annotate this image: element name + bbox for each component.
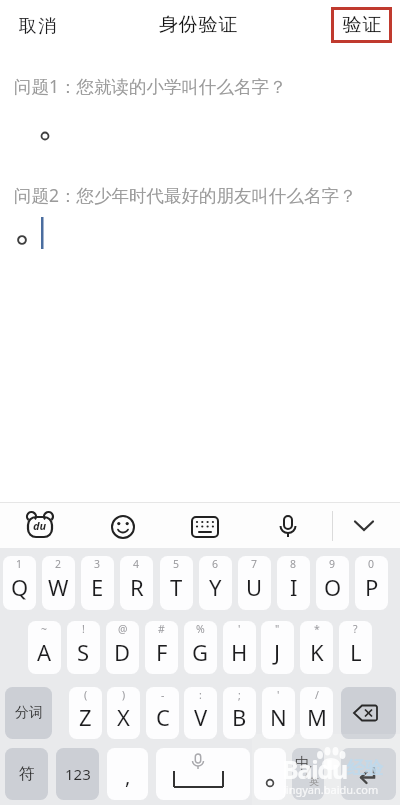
- staticText: V: [194, 702, 208, 732]
- staticText: (: [84, 688, 88, 702]
- staticText: X: [117, 702, 130, 732]
- staticText: N: [270, 702, 287, 732]
- staticText: P: [365, 572, 379, 602]
- button[interactable]: #: [145, 621, 178, 674]
- staticText: 符: [19, 764, 35, 784]
- staticText: jingyan.baidu.com: [283, 782, 379, 797]
- button[interactable]: 6: [199, 556, 232, 610]
- button[interactable]: :: [184, 687, 217, 739]
- staticText: ": [275, 622, 280, 636]
- staticText: 问题1：您就读的小学叫什么名字？: [14, 74, 287, 98]
- staticText: H: [231, 637, 248, 667]
- button[interactable]: [341, 748, 396, 800]
- staticText: *: [314, 622, 320, 636]
- staticText: ;: [238, 688, 241, 702]
- button[interactable]: ?: [339, 621, 372, 674]
- button[interactable]: [156, 748, 250, 800]
- staticText: 5: [173, 557, 180, 571]
- staticText: 经验: [347, 757, 383, 780]
- staticText: 中: [295, 754, 310, 773]
- staticText: W: [48, 572, 69, 602]
- staticText: #: [158, 622, 165, 636]
- staticText: K: [310, 637, 324, 667]
- staticText: /: [315, 688, 319, 702]
- staticText: O: [324, 572, 342, 602]
- button[interactable]: /: [300, 687, 333, 739]
- button[interactable]: [18, 503, 62, 547]
- staticText: L: [350, 637, 362, 667]
- staticText: M: [307, 702, 327, 732]
- staticText: B: [232, 702, 247, 732]
- button[interactable]: 0: [355, 556, 388, 610]
- staticText: T: [170, 572, 183, 602]
- button[interactable]: 9: [316, 556, 349, 610]
- button[interactable]: 4: [120, 556, 153, 610]
- button[interactable]: @: [106, 621, 139, 674]
- button[interactable]: [101, 503, 145, 547]
- staticText: 身份验证: [159, 13, 239, 37]
- staticText: 8: [290, 557, 297, 571]
- button[interactable]: *: [300, 621, 333, 674]
- button[interactable]: 取消: [10, 10, 64, 42]
- staticText: Baidu: [282, 752, 348, 786]
- staticText: ~: [41, 622, 48, 636]
- button[interactable]: !: [67, 621, 100, 674]
- button[interactable]: ': [223, 621, 256, 674]
- button[interactable]: 2: [42, 556, 75, 610]
- staticText: 问题2：您少年时代最好的朋友叫什么名字？: [14, 183, 357, 207]
- staticText: 7: [251, 557, 258, 571]
- button[interactable]: 符: [5, 748, 48, 800]
- button[interactable]: [266, 503, 310, 547]
- staticText: :: [199, 688, 202, 702]
- staticText: 9: [329, 557, 336, 571]
- button[interactable]: [340, 503, 384, 547]
- staticText: ': [238, 622, 241, 636]
- staticText: D: [114, 637, 131, 667]
- staticText: du: [33, 518, 47, 533]
- staticText: 0: [368, 557, 375, 571]
- staticText: @: [118, 622, 128, 636]
- staticText: R: [130, 572, 144, 602]
- button[interactable]: 分词: [5, 687, 52, 739]
- button[interactable]: -: [146, 687, 179, 739]
- staticText: 3: [94, 557, 101, 571]
- staticText: ': [277, 688, 280, 702]
- staticText: Z: [79, 702, 92, 732]
- staticText: ): [122, 688, 126, 702]
- button[interactable]: 1: [3, 556, 36, 610]
- button[interactable]: [341, 687, 396, 739]
- staticText: 123: [65, 764, 91, 784]
- button[interactable]: [183, 503, 227, 547]
- button[interactable]: ~: [28, 621, 61, 674]
- staticText: Y: [209, 572, 222, 602]
- button[interactable]: ;: [223, 687, 256, 739]
- button[interactable]: ": [261, 621, 294, 674]
- staticText: ?: [353, 622, 358, 636]
- button[interactable]: 中: [292, 748, 324, 800]
- button[interactable]: 5: [160, 556, 193, 610]
- staticText: E: [91, 572, 104, 602]
- button[interactable]: 3: [81, 556, 114, 610]
- staticText: A: [37, 637, 52, 667]
- button[interactable]: (: [69, 687, 102, 739]
- staticText: C: [156, 702, 170, 732]
- button[interactable]: ,: [107, 748, 148, 800]
- button[interactable]: 验证: [331, 7, 392, 43]
- staticText: U: [246, 572, 263, 602]
- button[interactable]: %: [184, 621, 217, 674]
- staticText: I: [290, 572, 298, 602]
- button[interactable]: ': [262, 687, 295, 739]
- button[interactable]: [254, 748, 286, 800]
- button[interactable]: 7: [238, 556, 271, 610]
- staticText: !: [82, 622, 85, 636]
- staticText: ,: [125, 763, 131, 790]
- button[interactable]: 123: [56, 748, 99, 800]
- button[interactable]: 8: [277, 556, 310, 610]
- staticText: 取消: [18, 15, 57, 38]
- button[interactable]: ): [107, 687, 140, 739]
- staticText: F: [156, 637, 168, 667]
- staticText: 6: [212, 557, 219, 571]
- staticText: S: [77, 637, 90, 667]
- staticText: 1: [16, 557, 23, 571]
- staticText: 英: [309, 775, 319, 788]
